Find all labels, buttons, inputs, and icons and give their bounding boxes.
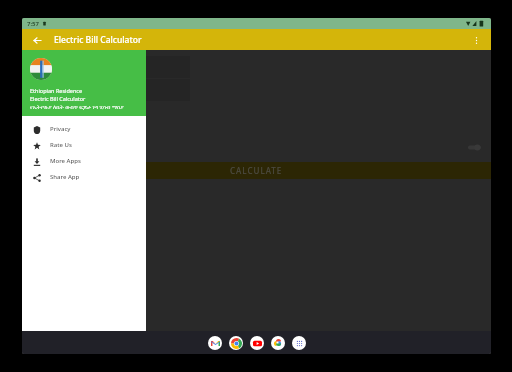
button[interactable]: Chrome <box>229 336 243 350</box>
staticText: Rate Us <box>50 141 72 149</box>
button[interactable]: Share App <box>22 169 146 185</box>
staticText: More Apps <box>50 157 81 165</box>
button[interactable]: YouTube <box>250 336 264 350</box>
button[interactable]: Gmail <box>208 336 222 350</box>
staticText: Privacy <box>50 125 71 133</box>
staticText: Electric Bill Calculator <box>30 95 86 102</box>
button[interactable]: Rate Us <box>22 137 146 153</box>
button[interactable]: CALCULATE <box>22 162 491 179</box>
button[interactable]: Photos <box>271 336 285 350</box>
staticText: Share App <box>50 173 80 181</box>
button[interactable]: Privacy <box>22 121 146 137</box>
staticText: Ethiopian Residence <box>30 87 83 94</box>
button[interactable]: Toggle <box>468 144 481 151</box>
button[interactable]: Back <box>30 33 44 47</box>
staticText: የኢትዮጵያ ለቤት ውስጥ ፍጆታ ነዳ ሂሳብ ማስያ <box>30 103 124 110</box>
staticText: Electric Bill Calculator <box>54 34 142 46</box>
button[interactable]: More Apps <box>22 153 146 169</box>
staticText: 7:57 <box>27 20 39 28</box>
staticText: CALCULATE <box>230 165 283 176</box>
button[interactable]: More options <box>469 33 483 47</box>
button[interactable]: All apps <box>292 336 306 350</box>
